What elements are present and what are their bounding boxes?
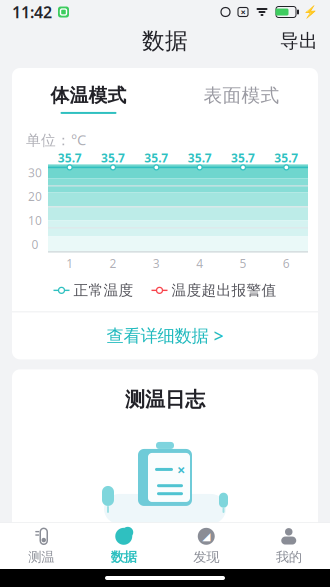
staticText: 5	[239, 255, 246, 271]
staticText: 30	[28, 164, 42, 180]
button[interactable]: ◢	[165, 522, 247, 570]
staticText: 数据	[142, 27, 188, 55]
staticText: ◢	[202, 530, 210, 542]
staticText: 2	[109, 255, 116, 271]
staticText: 测温日志	[125, 387, 205, 412]
staticText: 3	[153, 255, 160, 271]
staticText: 正常温度	[73, 281, 133, 299]
staticText: 测温	[28, 549, 54, 565]
staticText: ⚡	[303, 5, 318, 19]
staticText: 4	[196, 255, 203, 271]
button[interactable]: 查看详细数据	[12, 312, 318, 359]
staticText: >	[213, 324, 223, 347]
staticText: 查看详细数据	[106, 325, 208, 346]
staticText: 35.7	[188, 150, 212, 166]
staticText: 体温模式	[50, 84, 126, 107]
button[interactable]: 测温	[0, 522, 82, 570]
staticText: 1	[66, 255, 73, 271]
button[interactable]: 表面模式	[165, 74, 318, 124]
staticText: 35.7	[58, 150, 82, 166]
staticText: 表面模式	[203, 84, 279, 107]
staticText: 单位：°C	[26, 130, 86, 149]
staticText: 10	[28, 212, 42, 228]
staticText: 35.7	[144, 150, 168, 166]
staticText: 0	[31, 236, 38, 252]
staticText: ×	[177, 460, 185, 479]
staticText: 导出	[280, 29, 318, 52]
button[interactable]: 数据	[82, 522, 165, 570]
staticText: 6	[283, 255, 290, 271]
staticText: ×	[240, 6, 245, 18]
staticText: 我的	[276, 549, 302, 565]
staticText: 35.7	[274, 150, 298, 166]
staticText: 暂无测温日志数据	[101, 542, 229, 562]
staticText: 温度超出报警值	[171, 281, 276, 299]
staticText: 数据	[111, 549, 137, 565]
staticText: 11:42	[12, 1, 52, 23]
button[interactable]: 导出	[268, 21, 330, 60]
staticText: 35.7	[101, 150, 125, 166]
staticText: 20	[28, 188, 42, 204]
staticText: 35.7	[231, 150, 255, 166]
button[interactable]: 体温模式	[12, 74, 165, 124]
staticText: 发现	[193, 549, 219, 565]
button[interactable]: 我的	[247, 522, 330, 570]
